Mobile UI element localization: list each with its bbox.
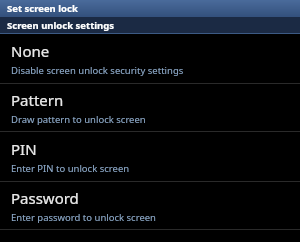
button[interactable]: PIN <box>0 132 300 181</box>
button[interactable]: Set screen lock <box>0 0 300 17</box>
staticText: Set screen lock <box>7 2 78 15</box>
staticText: Password <box>11 188 79 208</box>
staticText: Draw pattern to unlock screen <box>11 113 146 126</box>
staticText: None <box>11 41 50 61</box>
staticText: Disable screen unlock security settings <box>11 64 184 77</box>
staticText: Enter password to unlock screen <box>11 211 156 224</box>
button[interactable]: Pattern <box>0 84 300 131</box>
staticText: PIN <box>11 139 37 159</box>
button[interactable]: None <box>0 34 300 83</box>
button[interactable]: Password <box>0 182 300 229</box>
staticText: Enter PIN to unlock screen <box>11 162 130 175</box>
staticText: Screen unlock settings <box>7 19 115 32</box>
staticText: Pattern <box>11 90 64 110</box>
